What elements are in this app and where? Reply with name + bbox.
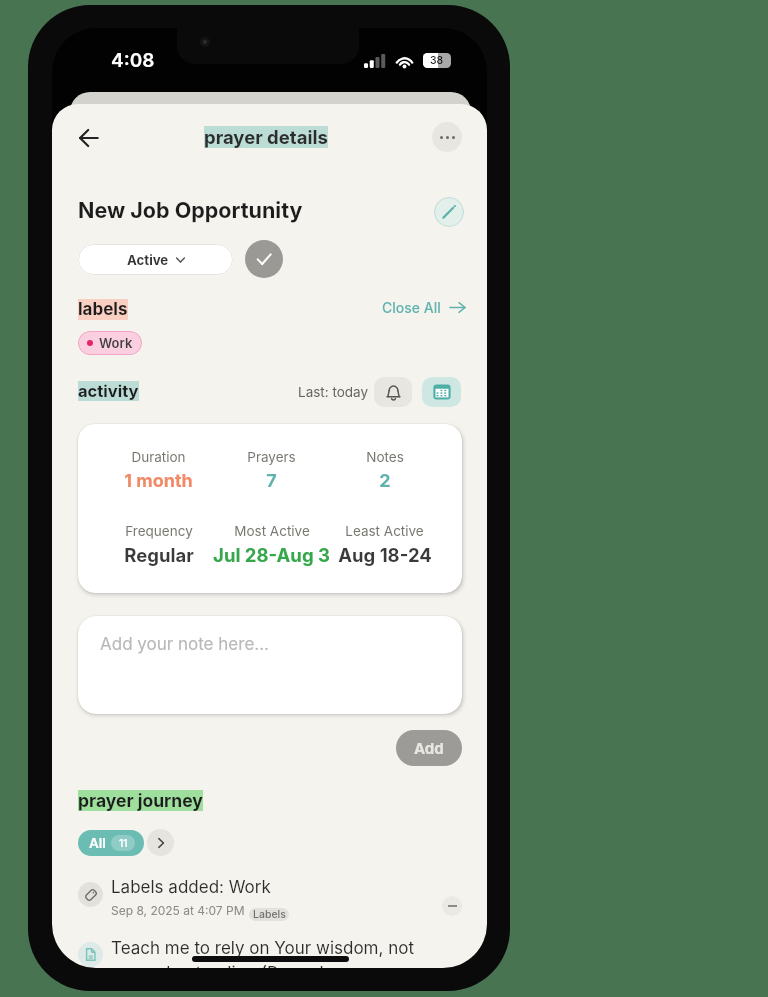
button[interactable]: More options: [432, 122, 462, 152]
staticText: 4:08: [111, 49, 155, 72]
staticText: 7: [266, 470, 277, 492]
staticText: Aug 18-24: [338, 544, 432, 566]
staticText: Add your note here...: [100, 634, 269, 655]
staticText: Last: today: [298, 384, 369, 400]
staticText: Close All: [382, 299, 441, 316]
staticText: Work: [99, 335, 133, 351]
button[interactable]: Teach me to rely on Your wisdom, not my …: [78, 938, 462, 968]
staticText: Labels: [253, 908, 286, 921]
button[interactable]: Reminders: [374, 377, 412, 407]
staticText: 2: [379, 470, 391, 492]
staticText: Jul 28-Aug 3: [213, 544, 330, 566]
staticText: Duration: [131, 449, 186, 465]
staticText: prayer details: [204, 126, 328, 148]
button[interactable]: Work: [78, 331, 142, 355]
staticText: Labels added: Work: [111, 877, 271, 898]
button[interactable]: Labels added: Work: [78, 877, 462, 923]
button[interactable]: Add: [396, 730, 462, 766]
staticText: 1 month: [124, 470, 193, 492]
staticText: Most Active: [234, 523, 310, 539]
staticText: Sep 8, 2025 at 4:07 PM: [111, 903, 245, 918]
staticText: Frequency: [125, 523, 193, 539]
staticText: Add: [414, 739, 444, 757]
button[interactable]: Remove: [442, 896, 462, 916]
button[interactable]: Active: [78, 244, 233, 275]
button[interactable]: Edit: [434, 197, 464, 227]
staticText: Prayers: [247, 449, 296, 465]
button[interactable]: Mark complete: [245, 240, 283, 278]
staticText: activity: [78, 381, 139, 401]
button[interactable]: Next: [147, 829, 174, 856]
staticText: labels: [78, 299, 128, 320]
staticText: 38: [430, 54, 444, 67]
staticText: All: [89, 835, 106, 851]
staticText: 11: [119, 837, 128, 850]
button[interactable]: Close All: [382, 299, 465, 316]
staticText: Active: [127, 252, 169, 268]
button[interactable]: Calendar: [422, 377, 461, 407]
staticText: Notes: [366, 449, 404, 465]
button[interactable]: All: [78, 830, 144, 856]
button[interactable]: Back: [68, 118, 108, 158]
staticText: Regular: [124, 544, 194, 566]
staticText: Teach me to rely on Your wisdom, not my …: [111, 938, 414, 968]
staticText: New Job Opportunity: [78, 197, 303, 223]
staticText: Least Active: [345, 523, 424, 539]
staticText: prayer journey: [78, 790, 203, 811]
